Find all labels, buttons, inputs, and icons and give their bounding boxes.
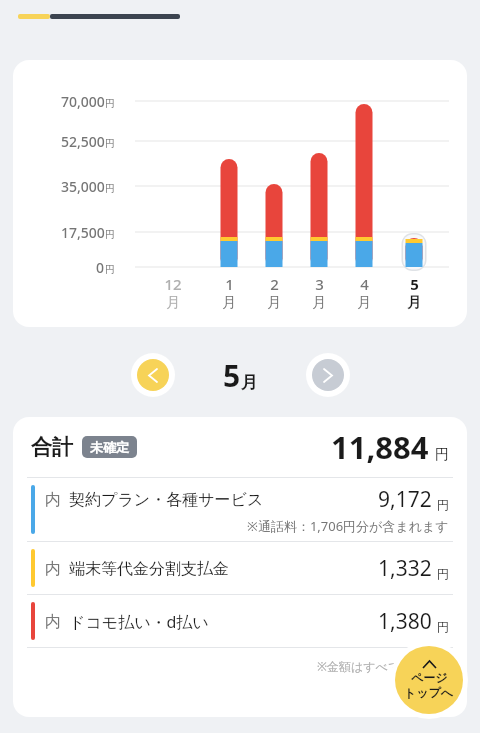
staticText: 内 (45, 612, 61, 632)
staticText: 円 (105, 228, 115, 241)
staticText: 1,380 (378, 607, 432, 636)
staticText: 月 (312, 294, 326, 312)
staticText: 70,000 (61, 92, 105, 111)
staticText: 円 (437, 566, 449, 581)
staticText: 円 (437, 497, 449, 512)
staticText: 0 (96, 258, 105, 277)
staticText: 52,500 (61, 132, 105, 151)
staticText: 12 (164, 274, 182, 294)
staticText: 端末等代金分割支払金 (69, 559, 229, 579)
staticText: 3 (315, 274, 324, 294)
staticText: ※通話料：1,706円分が含まれます (247, 517, 449, 535)
staticText: 円 (105, 137, 115, 150)
button[interactable]: 内 (13, 542, 467, 594)
staticText: 1,332 (378, 554, 432, 583)
staticText: 月 (166, 294, 180, 312)
staticText: 9,172 (378, 485, 432, 514)
staticText: 内 (45, 559, 61, 579)
staticText: 契約プラン・各種サービス (69, 490, 264, 510)
staticText: 月 (407, 294, 421, 312)
staticText: 月 (222, 294, 236, 312)
staticText: 17,500 (61, 223, 105, 242)
button[interactable]: 内 (13, 478, 467, 541)
staticText: 1 (225, 274, 234, 294)
staticText: ※金額はすべて税込です (317, 658, 449, 674)
staticText: 5 (410, 274, 419, 294)
staticText: 5 (223, 355, 241, 396)
staticText: 2 (270, 274, 279, 294)
staticText: 月 (357, 294, 371, 312)
staticText: 11,884 (331, 426, 429, 468)
button[interactable]: 内 (13, 595, 467, 647)
staticText: 35,000 (61, 177, 105, 196)
staticText: 円 (437, 619, 449, 634)
staticText: 合計 (31, 434, 73, 460)
staticText: トップへ (404, 685, 454, 700)
staticText: 月 (267, 294, 281, 312)
button[interactable]: 次の月 (306, 353, 350, 397)
staticText: 未確定 (90, 439, 129, 455)
staticText: ドコモ払い・d払い (69, 611, 209, 633)
staticText: 円 (105, 263, 115, 276)
staticText: ページ (411, 670, 448, 685)
button[interactable]: ページトップへ (395, 646, 463, 714)
staticText: 円 (105, 182, 115, 195)
staticText: 円 (105, 97, 115, 110)
staticText: 円 (435, 446, 449, 464)
staticText: 4 (360, 274, 369, 294)
staticText: 内 (45, 490, 61, 510)
button[interactable]: 前の月 (131, 353, 175, 397)
staticText: 月 (241, 372, 258, 393)
